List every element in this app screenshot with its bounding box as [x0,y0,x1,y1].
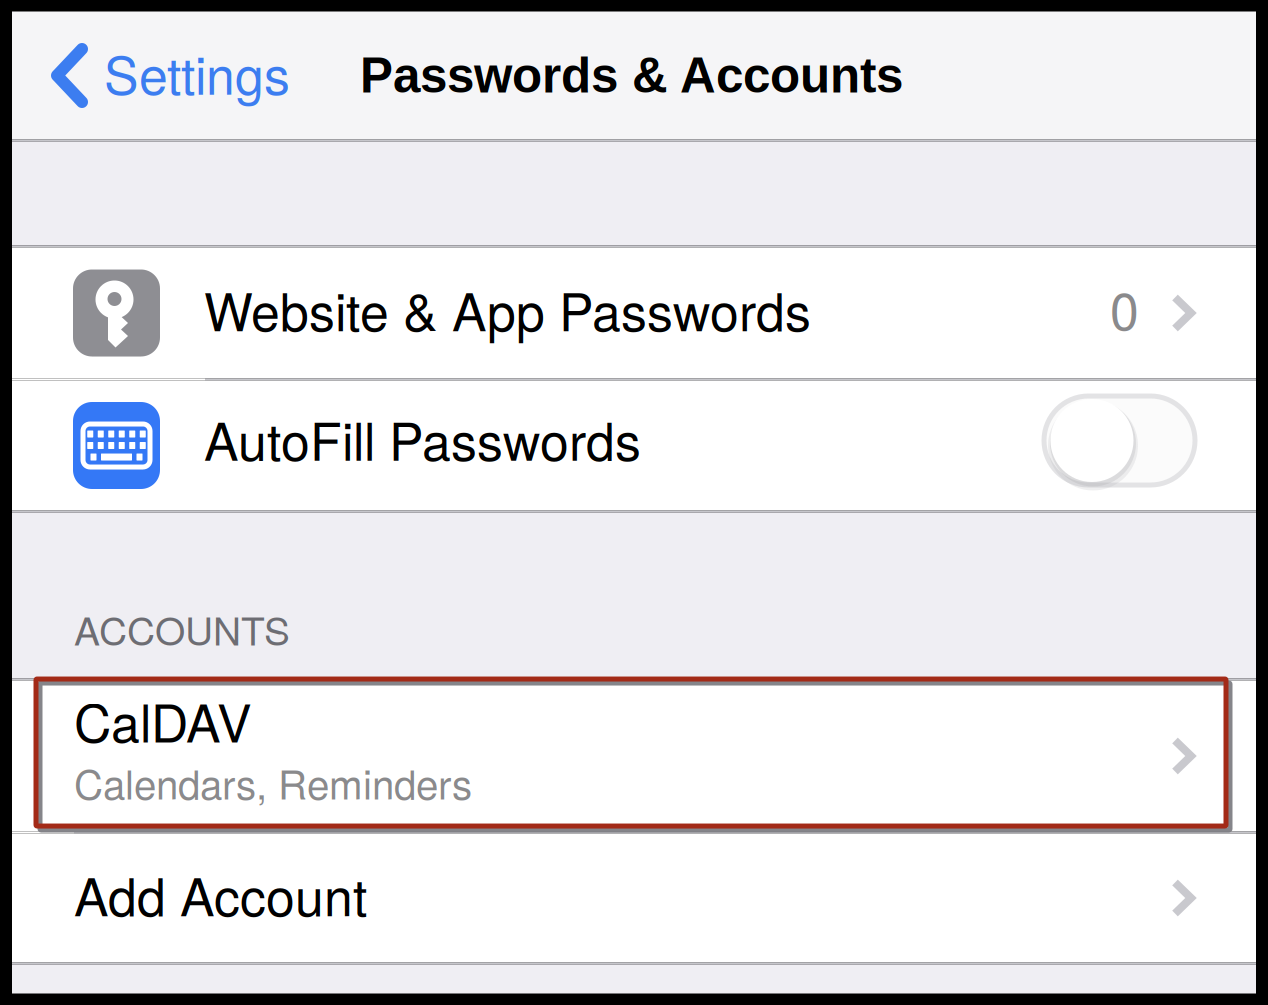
staticText: CalDAV [74,683,252,757]
staticText: Add Account [74,857,367,931]
staticText: Settings [104,35,290,110]
button[interactable]: Settings [12,11,306,139]
staticText: Website & App Passwords [204,272,811,346]
button[interactable]: CalDAV [12,680,1256,831]
button[interactable]: Website & App Passwords [12,247,1256,378]
staticText: AutoFill Passwords [204,401,641,476]
staticText: Calendars, Reminders [74,753,472,811]
staticText: Passwords & Accounts [360,48,903,103]
button[interactable]: AutoFill Passwords, off [1044,399,1256,491]
staticText: 0 [1110,271,1139,345]
staticText: ACCOUNTS [74,601,290,656]
button[interactable]: Add Account [12,833,1256,962]
